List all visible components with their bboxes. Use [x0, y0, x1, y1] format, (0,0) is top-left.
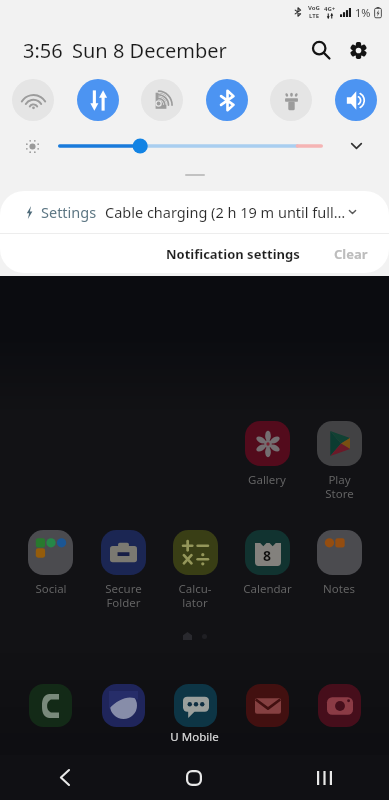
button[interactable]: Sound: [141, 79, 183, 121]
staticText: Calcu- lator: [178, 581, 212, 610]
staticText: VoG: [308, 4, 320, 12]
staticText: 8: [263, 546, 272, 565]
staticText: Social: [35, 581, 67, 597]
button[interactable]: Wi-Fi: [12, 79, 54, 121]
staticText: Secure Folder: [105, 581, 142, 610]
button[interactable]: Recents: [259, 755, 389, 800]
button[interactable]: Settings: [25, 191, 357, 233]
button[interactable]: Bluetooth: [206, 79, 248, 121]
button[interactable]: Play Store: [303, 421, 375, 501]
button[interactable]: [87, 683, 159, 728]
button[interactable]: Clear: [325, 237, 377, 271]
staticText: 1%: [355, 5, 371, 20]
staticText: Sun 8 December: [72, 37, 227, 64]
button[interactable]: Back: [0, 755, 129, 800]
button[interactable]: Gallery: [231, 421, 303, 488]
button[interactable]: Expand: [343, 133, 369, 159]
staticText: Settings: [41, 202, 97, 222]
button[interactable]: Secure Folder: [87, 530, 159, 610]
button[interactable]: [231, 683, 303, 728]
staticText: U Mobile: [170, 729, 219, 745]
button[interactable]: Mobile data: [77, 79, 119, 121]
staticText: Clear: [334, 245, 368, 263]
button[interactable]: Calcu- lator: [159, 530, 231, 610]
button[interactable]: Volume: [335, 79, 377, 121]
button[interactable]: Settings: [342, 34, 374, 66]
staticText: 4G+: [324, 5, 336, 13]
button[interactable]: Social: [14, 530, 87, 597]
staticText: Play Store: [325, 472, 354, 501]
button[interactable]: Search: [305, 34, 337, 66]
button[interactable]: [14, 683, 87, 728]
button[interactable]: 8: [231, 530, 303, 597]
staticText: LTE: [309, 12, 320, 20]
staticText: Calendar: [243, 581, 292, 597]
staticText: Notification settings: [166, 245, 300, 263]
button[interactable]: [159, 683, 231, 728]
staticText: Gallery: [248, 472, 286, 488]
button[interactable]: [303, 683, 375, 728]
button[interactable]: Notification settings: [157, 237, 309, 271]
staticText: Cable charging (2 h 19 m until full…: [105, 202, 346, 222]
button[interactable]: Notes: [303, 530, 375, 597]
staticText: Notes: [323, 581, 355, 597]
staticText: 3:56: [23, 37, 63, 64]
button[interactable]: Flashlight: [270, 79, 312, 121]
button[interactable]: Home: [129, 755, 259, 800]
